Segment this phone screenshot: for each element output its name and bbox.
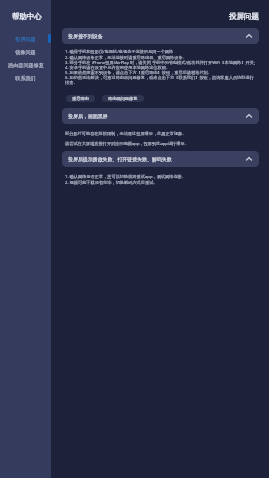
staticText: 请尝试在大屏端直接打开对应的视频app，投屏到此app进行播放。 — [65, 141, 189, 147]
button[interactable]: 联系我们 — [0, 71, 51, 84]
staticText: 投屏后，画面黑屏 — [68, 113, 108, 119]
staticText: 路由器问题修复 — [8, 62, 44, 68]
staticText: 投屏搜不到设备 — [68, 33, 103, 39]
button[interactable]: 重启路由 — [66, 95, 95, 102]
staticText: 1. 确认网络是否正常，您可以切换线路重试app，测试网络连接。 2. 视频可能… — [65, 174, 186, 185]
other: 收起 — [246, 33, 252, 39]
button[interactable]: 投屏后，画面黑屏 — [62, 108, 259, 124]
staticText: 投屏后提示播放失败、打开链接失败、解码失败 — [68, 156, 172, 162]
staticText: 路由器问题修复 — [108, 96, 138, 101]
other: 收起 — [246, 113, 252, 119]
button[interactable]: 投屏搜不到设备 — [62, 28, 259, 44]
button[interactable]: 路由器问题修复 — [102, 95, 144, 102]
staticText: 1. 确保手机和投影仪/电视机/电视盒子连接的是同一个网络 2. 确认网络设备正… — [65, 49, 257, 85]
staticText: 部分影片可能存在版权限制，无法通过投屏播放，此属正常现象。 — [65, 131, 187, 136]
button[interactable]: 镜像问题 — [0, 45, 51, 58]
staticText: 投屏问题 — [15, 36, 36, 42]
staticText: 投屏问题 — [229, 12, 259, 21]
staticText: 联系我们 — [15, 75, 36, 81]
button[interactable]: 投屏后提示播放失败、打开链接失败、解码失败 — [62, 151, 259, 167]
staticText: 帮助中心 — [12, 12, 42, 21]
button[interactable]: 投屏问题 — [0, 32, 51, 45]
button[interactable]: 路由器问题修复 — [0, 58, 51, 71]
other: 收起 — [246, 156, 252, 162]
staticText: 重启路由 — [72, 96, 89, 101]
staticText: 镜像问题 — [15, 49, 36, 55]
